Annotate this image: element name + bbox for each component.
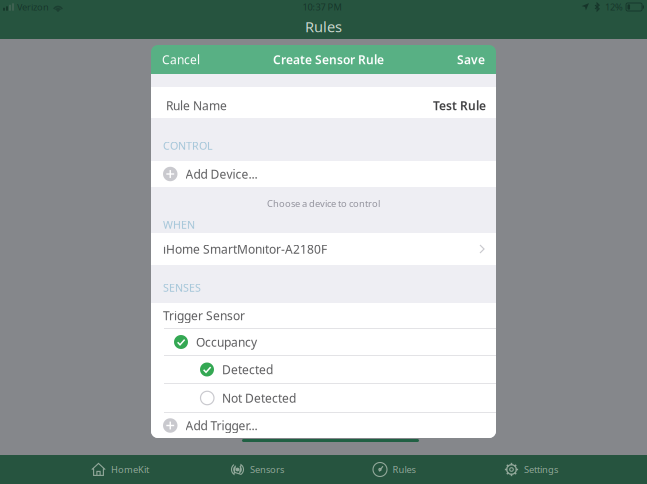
button[interactable]: Trigger Sensor xyxy=(151,303,496,329)
staticText: Save xyxy=(457,51,485,67)
staticText: iHome SmartMonitor-A2180F xyxy=(163,241,327,257)
button[interactable]: Rule Name xyxy=(151,87,496,118)
button[interactable]: Not Detected xyxy=(151,384,496,413)
button[interactable]: Add Device... xyxy=(151,161,496,187)
staticText: Create Sensor Rule xyxy=(273,51,384,67)
staticText: CONTROL xyxy=(163,138,213,153)
staticText: Trigger Sensor xyxy=(163,307,245,323)
button[interactable]: Settings xyxy=(462,455,599,484)
staticText: Not Detected xyxy=(222,390,296,406)
staticText: Add Device... xyxy=(185,166,257,182)
button[interactable]: Sensors xyxy=(188,455,325,484)
staticText: 10:37 PM xyxy=(302,1,341,13)
button[interactable]: Occupancy xyxy=(151,329,496,356)
button[interactable]: Save xyxy=(446,46,496,73)
staticText: Rule Name xyxy=(166,97,227,113)
staticText: Settings xyxy=(524,463,558,476)
button[interactable]: Detected xyxy=(151,356,496,384)
staticText: Add Trigger... xyxy=(185,417,257,433)
button[interactable]: iHome SmartMonitor-A2180F xyxy=(151,233,496,265)
staticText: WHEN xyxy=(163,217,195,232)
staticText: SENSES xyxy=(163,280,201,295)
button[interactable]: Rules xyxy=(325,455,462,484)
staticText: Verizon xyxy=(17,1,49,13)
staticText: Rules xyxy=(392,463,415,476)
button[interactable]: HomeKit xyxy=(51,455,188,484)
staticText: 12% xyxy=(605,1,623,13)
staticText: Test Rule xyxy=(433,97,486,113)
staticText: Detected xyxy=(222,361,273,377)
staticText: Occupancy xyxy=(196,334,257,350)
button[interactable]: Add Trigger... xyxy=(151,413,496,438)
staticText: Cancel xyxy=(162,51,200,67)
staticText: HomeKit xyxy=(111,463,149,476)
button[interactable]: Cancel xyxy=(151,46,211,73)
staticText: Sensors xyxy=(250,463,284,476)
staticText: Rules xyxy=(305,17,342,36)
staticText: Choose a device to control xyxy=(267,197,380,210)
